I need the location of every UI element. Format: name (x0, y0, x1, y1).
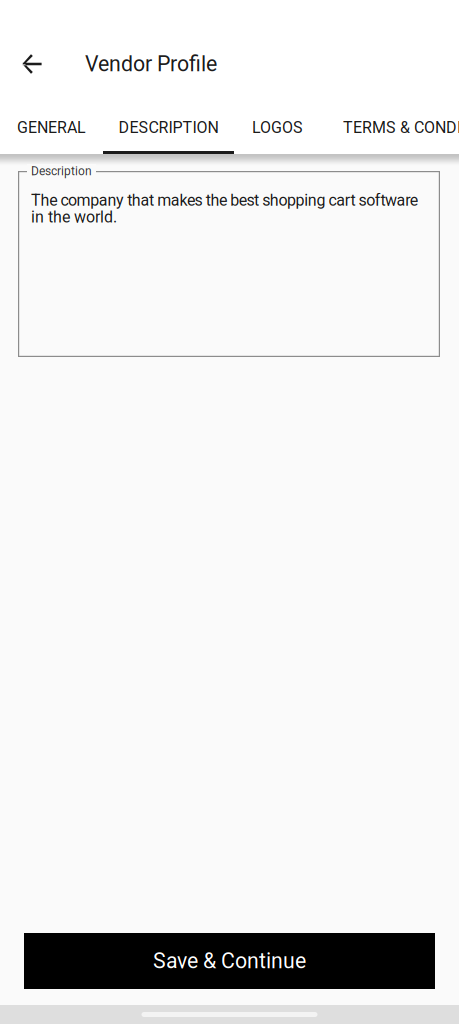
staticText: Save & Continue (153, 948, 306, 973)
button[interactable]: TERMS & CONDITIONS (321, 104, 459, 154)
button[interactable]: DESCRIPTION (103, 104, 234, 154)
button[interactable]: Back (10, 42, 54, 86)
staticText: TERMS & CONDITIONS (343, 118, 459, 137)
staticText: LOGOS (252, 118, 303, 137)
staticText: The company that makes the best shopping… (31, 191, 418, 210)
staticText: GENERAL (17, 118, 86, 137)
staticText: Description (31, 164, 92, 178)
staticText: Vendor Profile (85, 51, 217, 76)
button[interactable]: LOGOS (234, 104, 321, 154)
staticText: DESCRIPTION (118, 118, 218, 137)
staticText: in the world. (31, 208, 117, 227)
button[interactable]: Save & Continue (24, 933, 435, 989)
button[interactable]: GENERAL (0, 104, 103, 154)
